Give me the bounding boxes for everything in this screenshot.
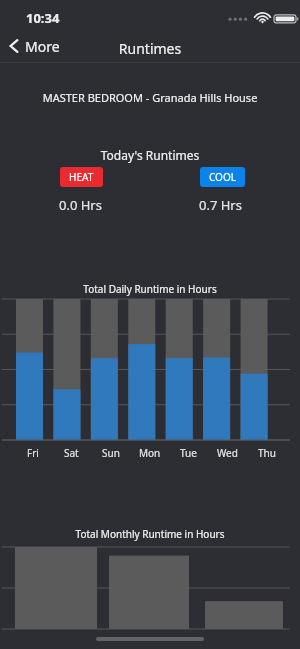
staticText: More <box>25 37 60 56</box>
staticText: 0.0 Hrs <box>59 196 102 214</box>
staticText: Sun <box>102 446 120 460</box>
staticText: Sat <box>64 446 79 460</box>
button[interactable]: COOL <box>200 167 245 187</box>
staticText: Total Daily Runtime in Hours <box>0 282 300 296</box>
staticText: MASTER BEDROOM - Granada Hills House <box>0 90 300 105</box>
staticText: 0.7 Hrs <box>199 196 242 214</box>
button[interactable]: More <box>4 33 64 59</box>
staticText: Tue <box>180 446 197 460</box>
staticText: Today's Runtimes <box>0 147 300 163</box>
staticText: 10:34 <box>26 9 60 27</box>
button[interactable]: HEAT <box>60 167 103 187</box>
staticText: Fri <box>27 446 39 460</box>
staticText: HEAT <box>69 170 94 184</box>
staticText: Runtimes <box>0 39 300 58</box>
staticText: Mon <box>139 446 161 460</box>
staticText: Thu <box>258 446 276 460</box>
staticText: Wed <box>217 446 238 460</box>
staticText: COOL <box>209 170 236 184</box>
staticText: Total Monthly Runtime in Hours <box>0 527 300 541</box>
